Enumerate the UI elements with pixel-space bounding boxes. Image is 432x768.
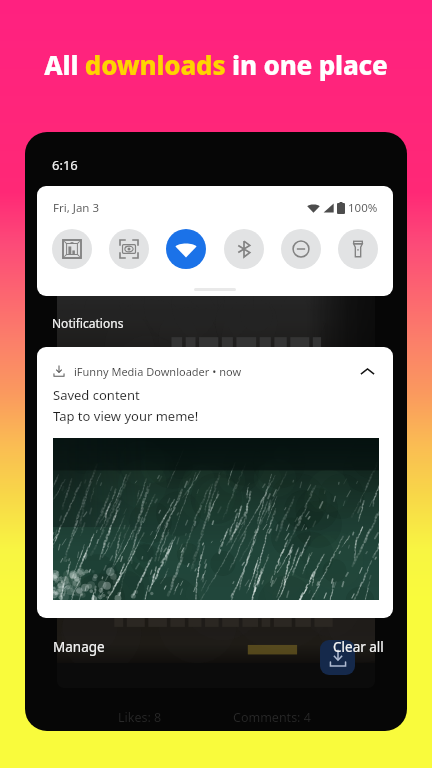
staticText: Tap to view your meme! bbox=[53, 407, 199, 425]
staticText: Likes: 8 bbox=[118, 709, 162, 726]
button[interactable]: Clear all bbox=[333, 638, 384, 656]
button[interactable]: Manage bbox=[53, 638, 105, 656]
staticText: Saved content bbox=[53, 386, 140, 404]
staticText: Manage bbox=[53, 638, 105, 656]
staticText: All downloads in one place bbox=[44, 47, 388, 82]
staticText: Fri, Jan 3 bbox=[53, 200, 100, 216]
button[interactable]: Bluetooth bbox=[224, 229, 264, 269]
staticText: Notifications bbox=[52, 315, 124, 331]
staticText: Comments: 4 bbox=[233, 709, 311, 726]
button[interactable]: Collapse notification bbox=[356, 360, 378, 382]
button[interactable]: Cast screen bbox=[52, 229, 92, 269]
button[interactable]: Do not disturb bbox=[281, 229, 321, 269]
button[interactable]: Wi-Fi bbox=[166, 229, 206, 269]
staticText: iFunny Media Downloader • now bbox=[74, 364, 242, 379]
button[interactable]: Flashlight bbox=[338, 229, 378, 269]
staticText: 6:16 bbox=[52, 156, 78, 174]
button[interactable]: Screen record bbox=[109, 229, 149, 269]
staticText: Clear all bbox=[333, 638, 384, 656]
staticText: 100% bbox=[348, 200, 378, 216]
